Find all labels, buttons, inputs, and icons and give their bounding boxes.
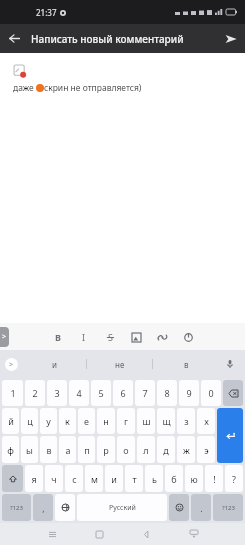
staticText: а (65, 444, 71, 456)
staticText: э (204, 444, 209, 456)
staticText: ч (51, 473, 57, 485)
button[interactable]: , (33, 494, 53, 521)
button[interactable]: Insert link (149, 324, 175, 350)
staticText: 6 (120, 387, 126, 399)
button[interactable]: Backspace (223, 380, 243, 406)
button[interactable]: 6 (113, 380, 133, 406)
button[interactable]: с (65, 465, 83, 492)
staticText: ? (232, 473, 236, 485)
staticText: д (163, 444, 169, 456)
button[interactable]: ?123 (2, 494, 31, 521)
button[interactable]: Русский (77, 494, 167, 521)
staticText: в (46, 444, 52, 456)
button[interactable]: я (25, 465, 43, 492)
button[interactable]: г (117, 408, 135, 434)
button[interactable]: б (165, 465, 183, 492)
button[interactable]: 4 (69, 380, 89, 406)
staticText: ш (142, 415, 151, 427)
staticText: Написать новый комментарий (31, 32, 184, 46)
button[interactable]: е (78, 408, 95, 434)
button[interactable]: ю (185, 465, 203, 492)
button[interactable]: Voice input (222, 356, 238, 372)
button[interactable]: Change language (55, 494, 75, 521)
button[interactable]: Home (76, 523, 123, 545)
button[interactable]: Shift (2, 465, 23, 492)
button[interactable]: Expand toolbar (0, 327, 9, 347)
button[interactable]: 8 (157, 380, 177, 406)
button[interactable]: S (97, 324, 123, 350)
button[interactable]: п (78, 436, 95, 463)
button[interactable]: а (59, 436, 76, 463)
button[interactable]: в (153, 350, 219, 378)
staticText: и (52, 359, 57, 370)
button[interactable]: н (97, 408, 115, 434)
staticText: 7 (142, 387, 148, 399)
button[interactable]: д (157, 436, 175, 463)
staticText: ?123 (222, 504, 235, 512)
button[interactable]: не (87, 350, 153, 378)
button[interactable]: й (2, 408, 19, 434)
staticText: даже (13, 82, 36, 94)
button[interactable]: 2 (25, 380, 45, 406)
button[interactable]: ы (21, 436, 38, 463)
button[interactable]: I (71, 324, 97, 350)
button[interactable]: з (177, 408, 195, 434)
button[interactable]: т (125, 465, 143, 492)
button[interactable]: ш (137, 408, 155, 434)
staticText: Русский (109, 503, 136, 513)
button[interactable]: Insert image (123, 324, 149, 350)
button[interactable]: B (45, 324, 71, 350)
button[interactable]: Attach (175, 324, 201, 350)
button[interactable]: л (137, 436, 155, 463)
button[interactable]: щ (157, 408, 175, 434)
button[interactable]: х (197, 408, 215, 434)
button[interactable]: More suggestions (5, 358, 18, 371)
staticText: л (143, 444, 149, 456)
button[interactable]: ь (145, 465, 163, 492)
button[interactable]: м (85, 465, 103, 492)
button[interactable]: о (117, 436, 135, 463)
button[interactable]: ! (205, 465, 223, 492)
button[interactable]: у (40, 408, 57, 434)
button[interactable]: в (40, 436, 57, 463)
button[interactable]: Back (123, 523, 170, 545)
button[interactable]: р (97, 436, 115, 463)
button[interactable]: Send (216, 24, 245, 53)
staticText: не (115, 359, 125, 370)
button[interactable]: ф (2, 436, 19, 463)
button[interactable]: и (22, 350, 87, 378)
staticText: 3 (54, 387, 60, 399)
button[interactable]: 7 (135, 380, 155, 406)
staticText: н (103, 415, 109, 427)
button[interactable]: 9 (179, 380, 199, 406)
staticText: скрин не отправляется) (44, 82, 142, 94)
staticText: к (65, 415, 70, 427)
button[interactable]: Emoji (169, 494, 189, 521)
button[interactable]: 1 (2, 380, 23, 406)
button[interactable]: . (191, 494, 211, 521)
staticText: р (103, 444, 109, 456)
staticText: у (46, 415, 51, 427)
button[interactable]: ц (21, 408, 38, 434)
button[interactable]: 0 (201, 380, 221, 406)
staticText: 2 (32, 387, 38, 399)
button[interactable]: Hide keyboard (170, 523, 217, 545)
button[interactable]: ?123 (213, 494, 243, 521)
button[interactable]: 3 (47, 380, 67, 406)
button[interactable]: ч (45, 465, 63, 492)
button[interactable]: Enter (217, 408, 243, 463)
button[interactable]: ж (177, 436, 195, 463)
button[interactable]: ? (225, 465, 243, 492)
staticText: ! (213, 473, 216, 485)
button[interactable]: Menu (29, 523, 76, 545)
button[interactable]: 5 (91, 380, 111, 406)
button[interactable]: Back (0, 24, 29, 53)
staticText: , (42, 502, 45, 514)
button[interactable]: э (197, 436, 215, 463)
staticText: е (84, 415, 89, 427)
button[interactable]: и (105, 465, 123, 492)
staticText: м (91, 473, 98, 485)
button[interactable]: к (59, 408, 76, 434)
staticText: г (124, 415, 128, 427)
staticText: т (132, 473, 137, 485)
